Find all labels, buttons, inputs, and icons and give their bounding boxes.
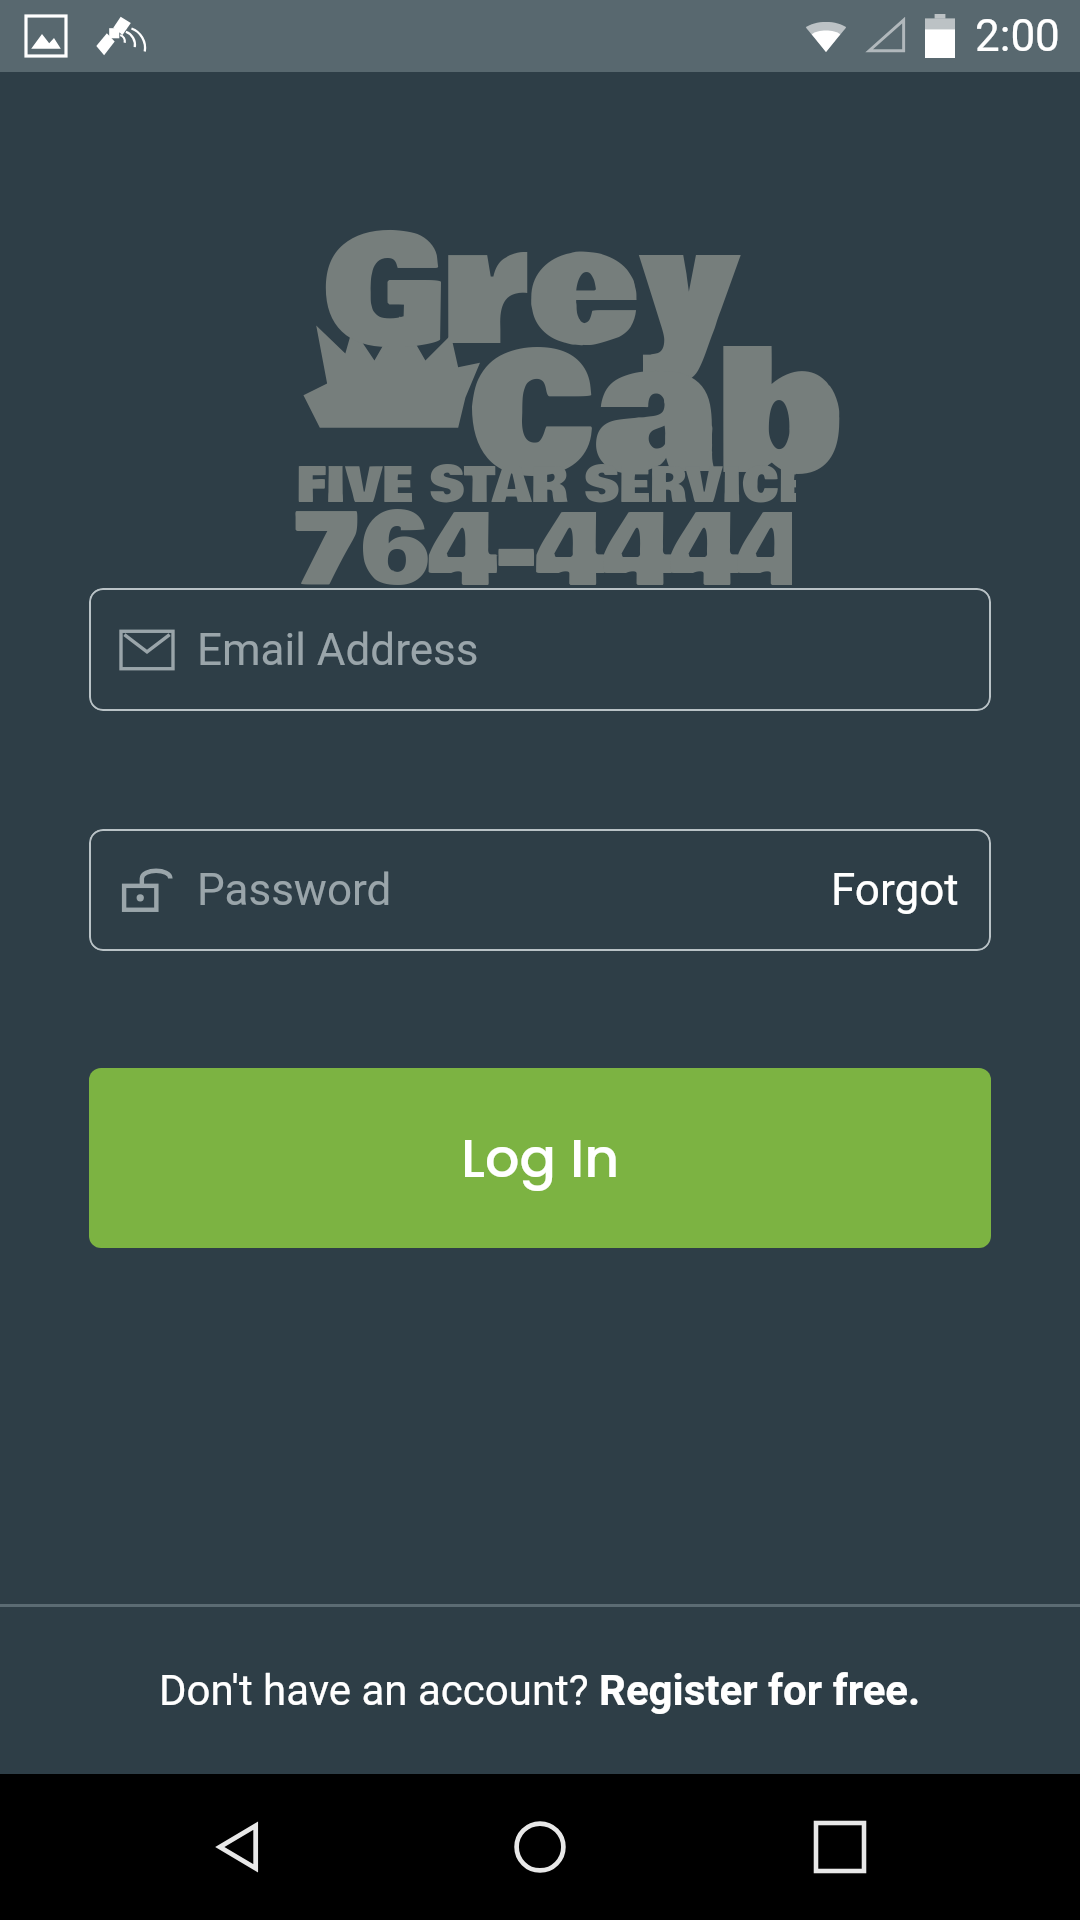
button[interactable]: Recents xyxy=(780,1787,900,1907)
staticText: 764-4444 xyxy=(292,476,792,626)
button[interactable]: Back xyxy=(180,1787,300,1907)
staticText: Email Address xyxy=(197,624,479,676)
staticText: 2:00 xyxy=(975,10,1060,62)
button[interactable]: Log In xyxy=(89,1068,991,1248)
staticText: Log In xyxy=(461,1120,620,1196)
staticText: Password xyxy=(197,864,392,916)
staticText: Grey xyxy=(322,176,743,411)
button[interactable]: Don't have an account? Register for free… xyxy=(0,1607,1080,1774)
staticText: Don't have an account? Register for free… xyxy=(159,1666,921,1715)
staticText: Forgot xyxy=(831,864,959,916)
staticText: Cab xyxy=(468,288,844,546)
button[interactable]: Home xyxy=(480,1787,600,1907)
button[interactable]: Password xyxy=(89,829,991,951)
button[interactable]: Email Address xyxy=(89,588,991,711)
staticText: FIVE STAR SERVICE xyxy=(296,448,796,523)
